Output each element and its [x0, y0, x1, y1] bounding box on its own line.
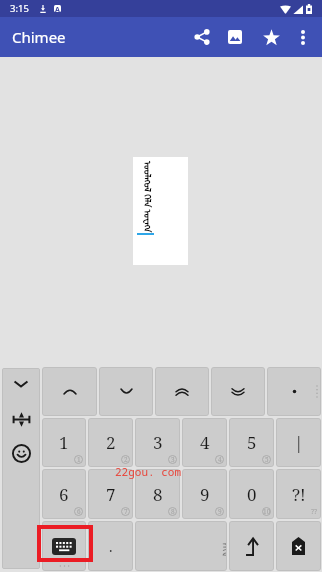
staticText: 5 [265, 455, 269, 464]
button[interactable]: 4 [182, 418, 227, 467]
button[interactable]: Space [135, 521, 227, 571]
button[interactable]: Enter [229, 521, 274, 571]
staticText: Chimee [12, 27, 66, 47]
button[interactable]: . [88, 521, 133, 571]
staticText: 7 [124, 507, 128, 516]
staticText: 8 [153, 483, 163, 506]
button[interactable]: Resize keyboard [2, 407, 40, 431]
button[interactable]: Emoji [2, 441, 40, 465]
button[interactable]: Insert image [218, 17, 252, 57]
button[interactable]: 7 [88, 469, 133, 519]
button[interactable]: Backspace [276, 521, 321, 571]
button[interactable]: Hide keyboard [2, 372, 40, 396]
button[interactable]: 8 [135, 469, 180, 519]
button[interactable]: 6 [42, 469, 86, 519]
staticText: ?? [311, 507, 318, 517]
staticText: . [109, 537, 113, 556]
button[interactable]: 9 [182, 469, 227, 519]
staticText: 6 [77, 507, 81, 516]
staticText: 6 [59, 483, 69, 506]
staticText: 2 [124, 455, 128, 464]
button[interactable]: 0 [229, 469, 274, 519]
button[interactable]: 1 [42, 418, 86, 467]
button[interactable]: Favorite [254, 17, 288, 57]
staticText: ?! [292, 483, 306, 506]
staticText: 22gou. com [115, 464, 181, 479]
button[interactable]: Double breve below [211, 367, 265, 416]
staticText: 7 [106, 483, 116, 506]
button[interactable]: More options [288, 17, 318, 57]
button[interactable]: 5 [229, 418, 274, 467]
button[interactable]: Switch keyboard [42, 521, 86, 571]
button[interactable]: Breve above [42, 367, 97, 416]
staticText: 0 [247, 483, 257, 506]
staticText: 4 [218, 455, 222, 464]
staticText: 1 [77, 455, 81, 464]
staticText: A [55, 5, 60, 12]
button[interactable]: | [276, 418, 321, 467]
staticText: 8 [171, 507, 175, 516]
staticText: 1 [59, 431, 69, 454]
staticText: 10 [263, 507, 271, 516]
staticText: 9 [218, 507, 222, 516]
button[interactable]: ?! [276, 469, 321, 519]
staticText: 3:15 [10, 2, 29, 15]
button[interactable]: Share [185, 17, 219, 57]
button[interactable]: 2 [88, 418, 133, 467]
button[interactable]: Breve below [99, 367, 153, 416]
staticText: 2 [106, 431, 116, 454]
staticText: 4 [200, 431, 210, 454]
button[interactable]: Dot [267, 367, 321, 416]
button[interactable]: Double breve above [155, 367, 209, 416]
staticText: 5 [247, 431, 257, 454]
staticText: 9 [200, 483, 210, 506]
staticText: | [294, 431, 304, 454]
button[interactable]: 3 [135, 418, 180, 467]
staticText: 3 [171, 455, 175, 464]
staticText: 3 [153, 431, 163, 454]
